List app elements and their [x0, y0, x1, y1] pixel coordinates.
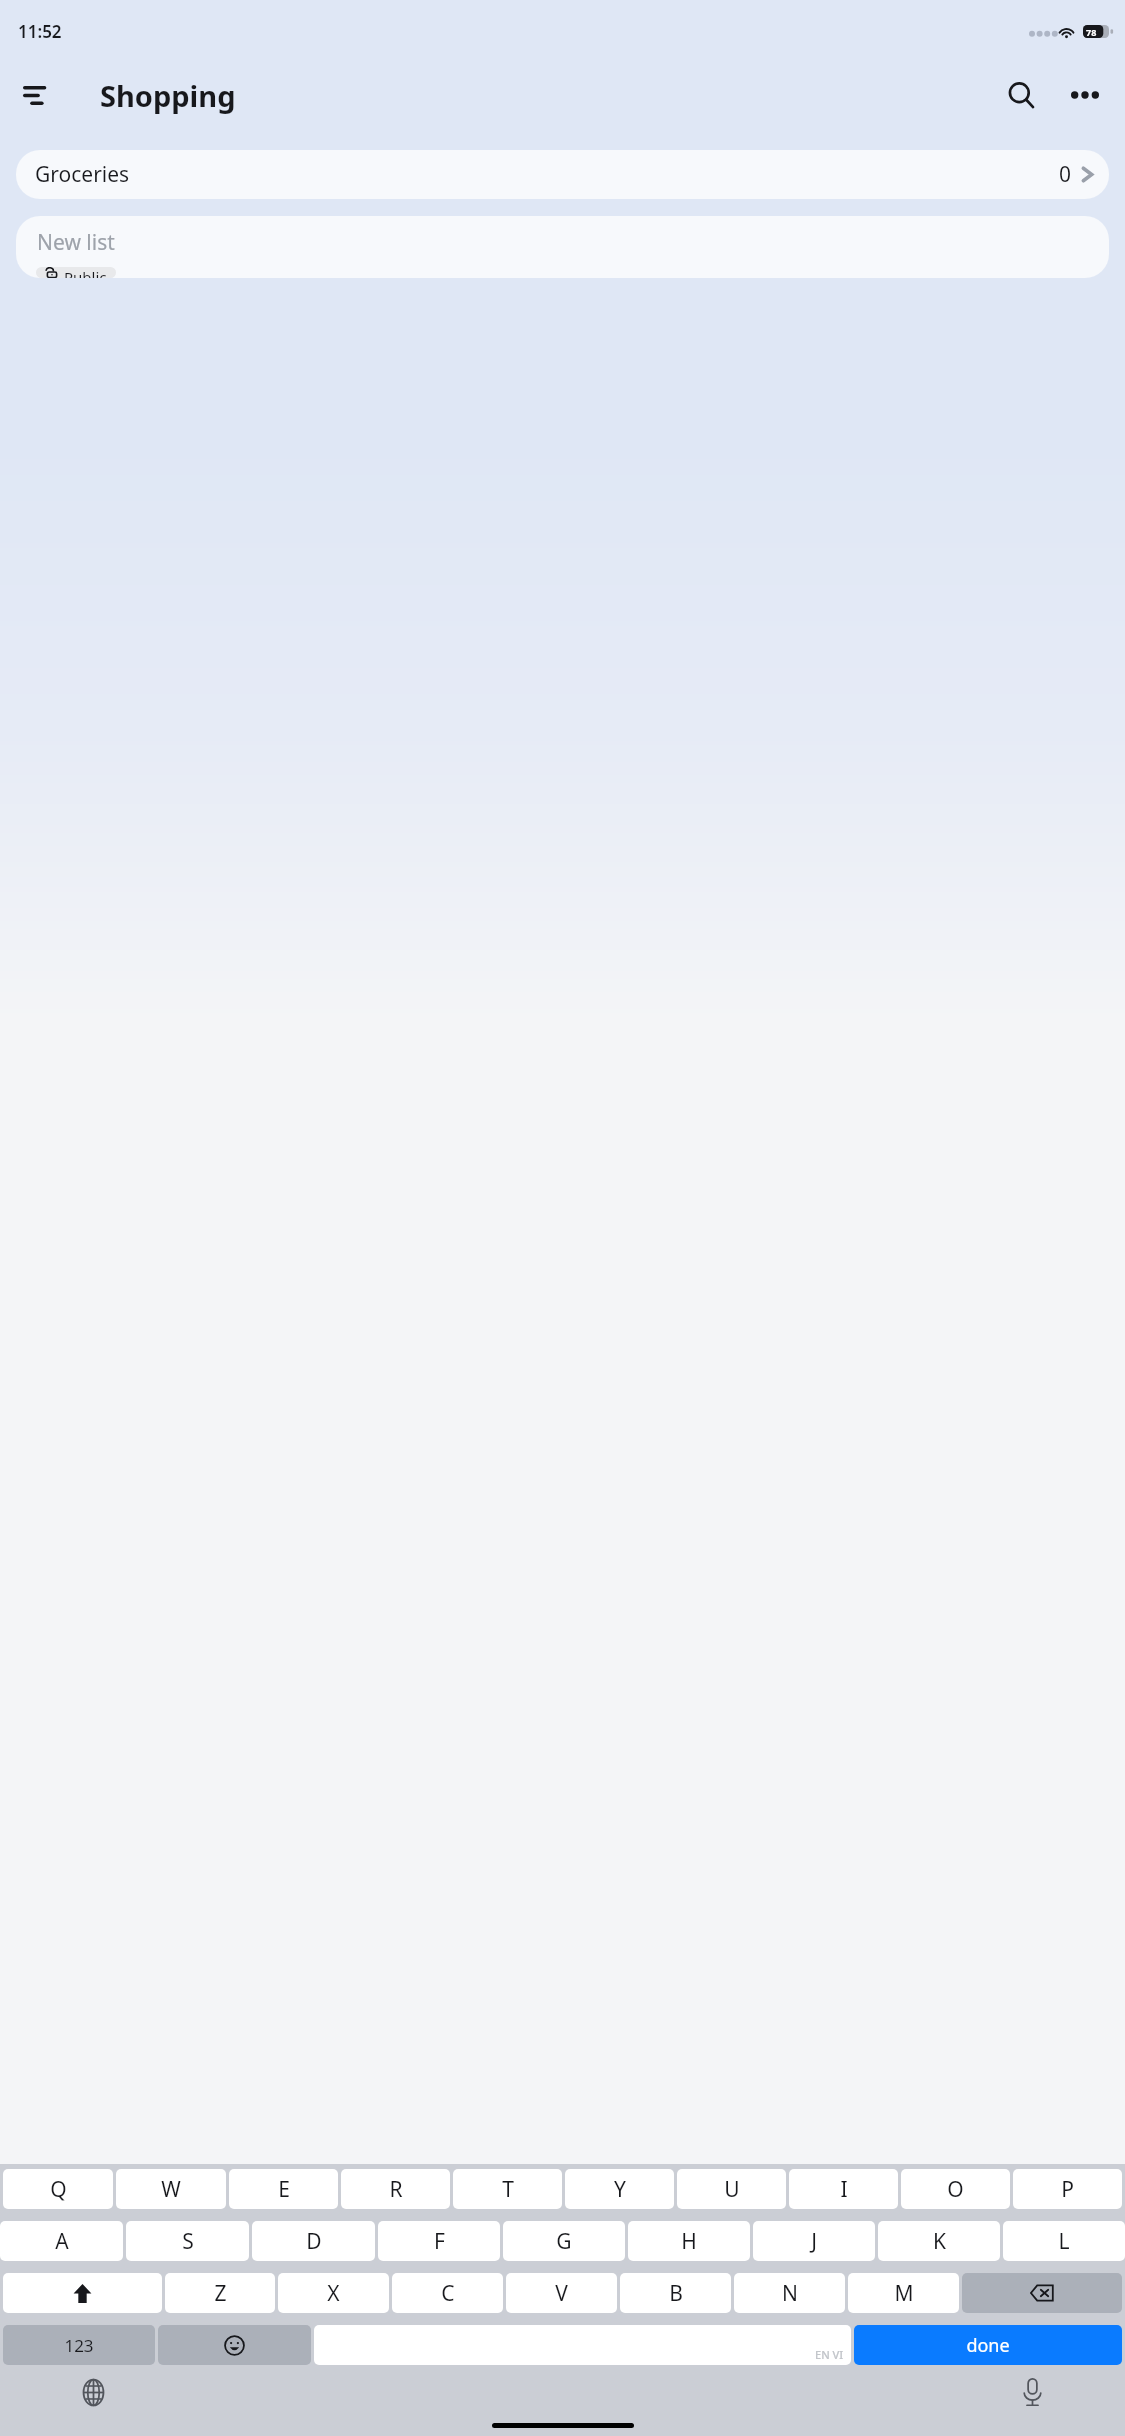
- button[interactable]: O: [901, 2169, 1010, 2209]
- staticText: I: [840, 2175, 848, 2204]
- button[interactable]: I: [789, 2169, 898, 2209]
- staticText: M: [894, 2279, 914, 2308]
- button[interactable]: B: [620, 2273, 731, 2313]
- button[interactable]: Change keyboard: [70, 2369, 116, 2415]
- button[interactable]: done: [854, 2325, 1122, 2365]
- button[interactable]: Menu: [12, 71, 60, 119]
- staticText: K: [933, 2227, 946, 2256]
- button[interactable]: Backspace: [962, 2273, 1122, 2313]
- staticText: 11:52: [18, 20, 62, 43]
- button[interactable]: V: [506, 2273, 617, 2313]
- staticText: 78: [1086, 26, 1097, 38]
- button[interactable]: Shift: [3, 2273, 162, 2313]
- staticText: C: [441, 2279, 455, 2308]
- button[interactable]: M: [848, 2273, 959, 2313]
- button[interactable]: Space: [314, 2325, 851, 2365]
- staticText: EN VI: [815, 2347, 844, 2362]
- button[interactable]: Z: [165, 2273, 275, 2313]
- staticText: T: [502, 2175, 514, 2204]
- button[interactable]: More options: [1059, 69, 1111, 121]
- staticText: H: [681, 2227, 697, 2256]
- staticText: O: [947, 2175, 964, 2204]
- button[interactable]: A: [0, 2221, 123, 2261]
- staticText: New list: [37, 228, 115, 257]
- button[interactable]: F: [378, 2221, 500, 2261]
- staticText: 0: [1059, 160, 1072, 189]
- button[interactable]: Dictation: [1009, 2369, 1055, 2415]
- staticText: A: [55, 2227, 69, 2256]
- button[interactable]: C: [392, 2273, 503, 2313]
- button[interactable]: Search: [995, 69, 1047, 121]
- button[interactable]: 123: [3, 2325, 155, 2365]
- button[interactable]: L: [1003, 2221, 1125, 2261]
- staticText: Groceries: [35, 160, 130, 189]
- button[interactable]: Groceries: [16, 150, 1109, 199]
- staticText: 123: [64, 2334, 94, 2357]
- staticText: J: [811, 2227, 817, 2256]
- staticText: N: [782, 2279, 798, 2308]
- staticText: F: [434, 2227, 445, 2256]
- button[interactable]: G: [503, 2221, 625, 2261]
- button[interactable]: J: [753, 2221, 875, 2261]
- button[interactable]: P: [1013, 2169, 1122, 2209]
- button[interactable]: Emoji: [158, 2325, 311, 2365]
- staticText: S: [182, 2227, 194, 2256]
- staticText: X: [327, 2279, 340, 2308]
- button[interactable]: S: [126, 2221, 249, 2261]
- staticText: Q: [50, 2175, 67, 2204]
- staticText: V: [555, 2279, 568, 2308]
- staticText: Shopping: [100, 76, 236, 115]
- staticText: W: [161, 2175, 181, 2204]
- staticText: Public: [64, 267, 107, 278]
- staticText: done: [966, 2333, 1010, 2358]
- staticText: R: [389, 2175, 403, 2204]
- staticText: L: [1058, 2227, 1070, 2256]
- button[interactable]: Public: [45, 267, 107, 278]
- button[interactable]: Q: [3, 2169, 113, 2209]
- button[interactable]: E: [229, 2169, 338, 2209]
- staticText: Z: [214, 2279, 227, 2308]
- staticText: U: [724, 2175, 740, 2204]
- button[interactable]: W: [116, 2169, 226, 2209]
- staticText: P: [1061, 2175, 1074, 2204]
- button[interactable]: U: [677, 2169, 786, 2209]
- button[interactable]: T: [453, 2169, 562, 2209]
- button[interactable]: K: [878, 2221, 1000, 2261]
- button[interactable]: Y: [565, 2169, 674, 2209]
- staticText: G: [556, 2227, 572, 2256]
- button[interactable]: N: [734, 2273, 845, 2313]
- button[interactable]: New list: [16, 216, 1109, 278]
- button[interactable]: D: [252, 2221, 375, 2261]
- staticText: Y: [614, 2175, 626, 2204]
- staticText: E: [278, 2175, 290, 2204]
- staticText: D: [306, 2227, 322, 2256]
- button[interactable]: R: [341, 2169, 450, 2209]
- staticText: B: [669, 2279, 683, 2308]
- button[interactable]: H: [628, 2221, 750, 2261]
- button[interactable]: X: [278, 2273, 389, 2313]
